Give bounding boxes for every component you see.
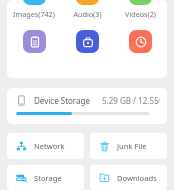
staticText: 5.29 GB / 12.55 GB — [102, 95, 159, 106]
button[interactable]: Apks(14) — [61, 28, 114, 58]
button[interactable]: Junk File — [90, 133, 167, 159]
staticText: Audio(3) — [73, 9, 102, 19]
button[interactable]: Device Storage — [7, 88, 167, 124]
staticText: Junk File — [117, 141, 147, 151]
button[interactable]: Videos(2) — [114, 0, 167, 21]
button[interactable]: Network — [7, 133, 84, 159]
staticText: Device Storage — [34, 95, 90, 106]
button[interactable]: Images(742) — [7, 0, 61, 21]
button[interactable]: Audio(3) — [61, 0, 114, 21]
button[interactable]: Docs(18) — [7, 28, 61, 58]
staticText: Network — [34, 141, 65, 151]
staticText: Downloads — [117, 173, 157, 183]
button[interactable]: Storage analysis — [7, 165, 84, 190]
staticText: Videos(2) — [125, 9, 156, 19]
staticText: Images(742) — [13, 9, 55, 19]
staticText: Storage analysis — [34, 173, 84, 183]
button[interactable]: New Files(13) — [114, 28, 167, 58]
button[interactable]: Downloads — [90, 165, 167, 190]
